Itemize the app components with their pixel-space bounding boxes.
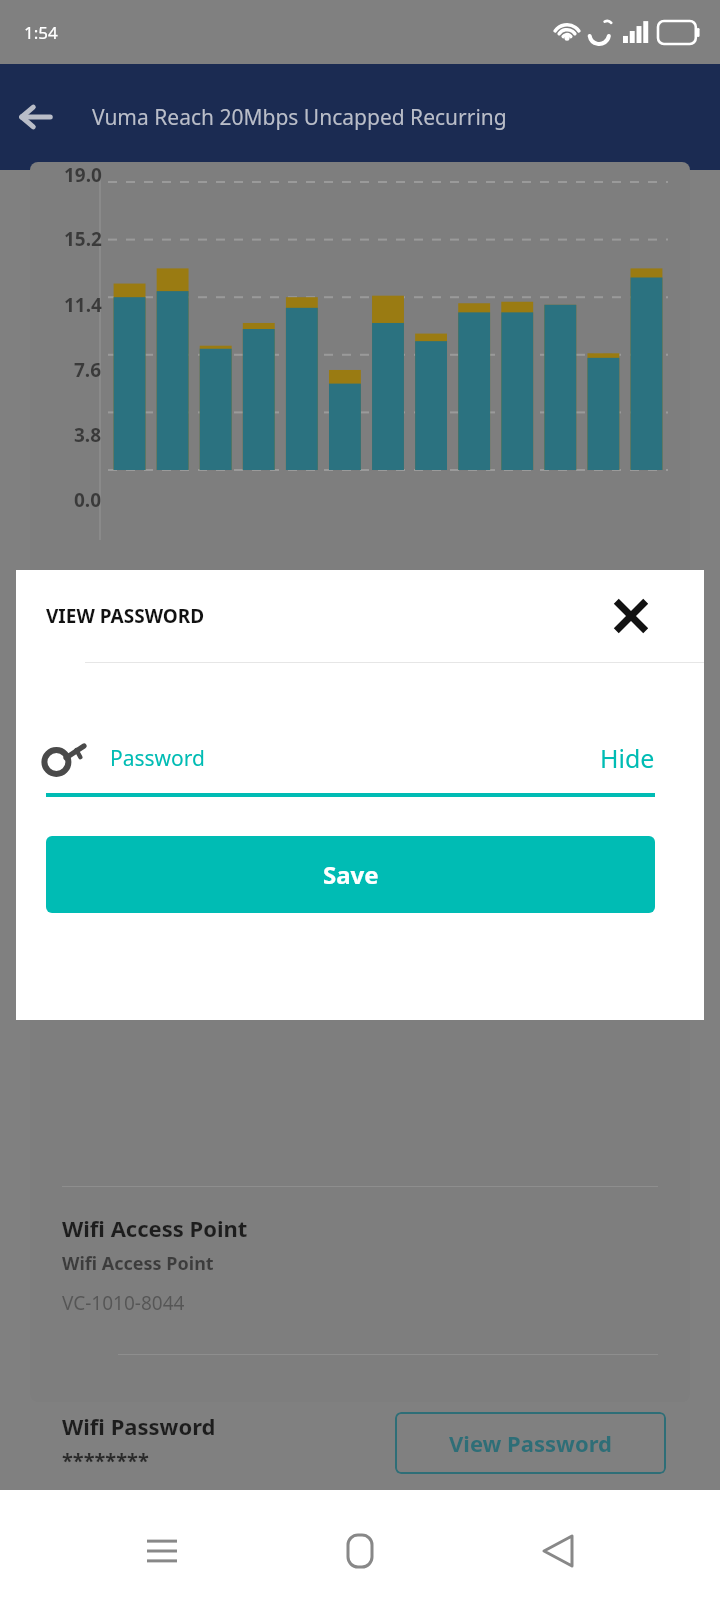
button[interactable]: View Password — [395, 1412, 666, 1474]
staticText: 0.0 — [74, 487, 102, 513]
staticText: Wifi Password — [62, 1411, 216, 1441]
staticText: 3.8 — [74, 422, 102, 448]
button[interactable]: Back — [522, 1515, 594, 1587]
staticText: 19.0 — [64, 162, 102, 188]
staticText: ******** — [62, 1447, 149, 1474]
button[interactable]: Recents — [126, 1515, 198, 1587]
staticText: VC-1010-8044 — [62, 1290, 185, 1316]
staticText: VIEW PASSWORD — [46, 603, 205, 629]
staticText: 1:54 — [24, 21, 58, 44]
button[interactable]: Back — [8, 89, 64, 145]
staticText: 15.2 — [64, 226, 102, 252]
staticText: Wifi Access Point — [62, 1251, 214, 1276]
staticText: Hide — [600, 741, 655, 775]
staticText: View Password — [449, 1428, 612, 1458]
staticText: Wifi Access Point — [62, 1213, 248, 1243]
staticText: Save — [323, 858, 379, 891]
button[interactable]: Close — [604, 589, 658, 643]
staticText: 7.6 — [74, 357, 102, 383]
button[interactable]: Home — [324, 1515, 396, 1587]
button[interactable]: Save — [46, 836, 655, 913]
staticText: Vuma Reach 20Mbps Uncapped Recurring — [92, 103, 507, 132]
button[interactable]: Password — [46, 723, 655, 793]
staticText: Password — [110, 744, 600, 773]
staticText: 11.4 — [64, 292, 102, 318]
